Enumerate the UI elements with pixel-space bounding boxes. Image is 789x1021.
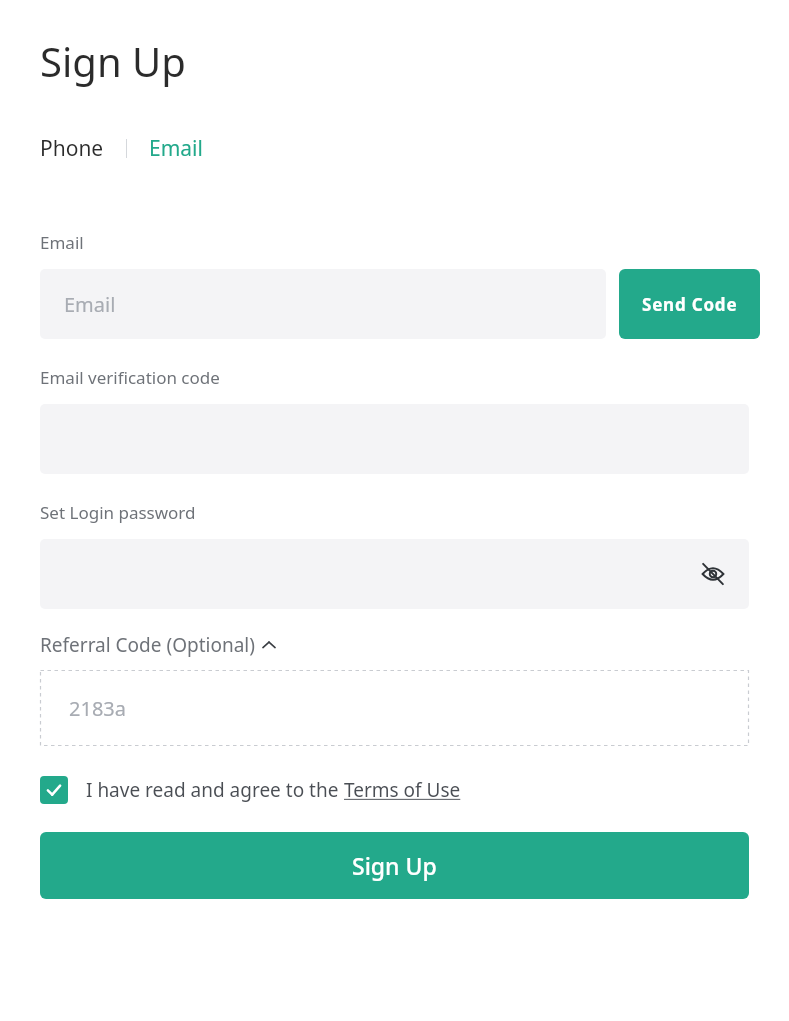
button[interactable]: Terms of Use [344,777,461,803]
staticText: Sign Up [352,850,437,881]
staticText: Sign Up [40,34,186,88]
button[interactable]: Email [40,269,606,339]
button[interactable]: 2183a [40,670,749,746]
staticText: Referral Code (Optional) [40,632,255,658]
staticText: 2183a [69,695,126,722]
staticText: I have read and agree to the [86,777,344,803]
staticText: Phone [40,134,104,163]
button[interactable]: Send Code [619,269,760,339]
staticText: Email [149,134,203,163]
staticText: Set Login password [40,501,196,524]
staticText: Email [64,291,116,318]
button[interactable]: Show password [694,555,732,593]
button[interactable]: Show password [40,539,749,609]
button[interactable]: Referral Code (Optional) [40,632,277,658]
staticText: Email [40,231,84,254]
button[interactable]: Sign Up [40,832,749,899]
button[interactable]: I have read and agree to the [40,776,461,804]
button[interactable]: Email [149,134,203,163]
staticText: Send Code [642,293,738,316]
button[interactable]: Phone [40,134,104,163]
staticText: Email verification code [40,366,220,389]
